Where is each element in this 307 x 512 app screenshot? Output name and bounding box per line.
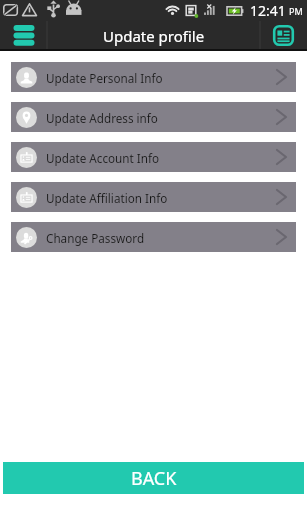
staticText: Change Password xyxy=(46,230,145,246)
button[interactable]: Open contact card xyxy=(260,20,307,51)
staticText: Update Address info xyxy=(46,110,158,126)
button[interactable]: Update Account Info xyxy=(11,142,296,172)
staticText: Update Personal Info xyxy=(46,70,163,86)
button[interactable]: Change Password xyxy=(11,222,296,252)
button[interactable]: Update Address info xyxy=(11,102,296,132)
staticText: BACK xyxy=(131,466,177,491)
button[interactable]: Update Personal Info xyxy=(11,62,296,92)
staticText: Update profile xyxy=(103,26,205,46)
button[interactable]: Menu xyxy=(0,20,47,51)
button[interactable]: BACK xyxy=(3,462,304,494)
staticText: Update Affiliation Info xyxy=(46,190,168,206)
staticText: 12:41 xyxy=(250,1,286,20)
button[interactable]: Update Affiliation Info xyxy=(11,182,296,212)
staticText: Update Account Info xyxy=(46,150,160,166)
staticText: PM xyxy=(289,5,303,17)
